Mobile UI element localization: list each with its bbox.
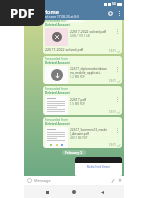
staticText: 1.2 MB PDF (70, 75, 85, 79)
staticText: last seen 17.08.23 at 8:5 (43, 15, 79, 19)
staticText: 22617-2022 solved.pdf (45, 47, 84, 52)
button[interactable]: Record voice message (116, 177, 123, 184)
staticText: Deleted Account (45, 61, 70, 65)
staticText: 4 KB / 191.1 kB (70, 34, 90, 38)
button[interactable]: Document options (115, 96, 120, 105)
button[interactable]: More options (115, 9, 123, 17)
staticText: Deleted Account (45, 23, 70, 27)
staticText: 1.5 MB PDF (70, 102, 85, 106)
button[interactable]: Media Feed Viewer (75, 157, 122, 176)
button[interactable]: Document options (115, 127, 120, 136)
button[interactable]: Attach file (109, 177, 116, 184)
staticText: 22617_diplomarbeitbase (70, 67, 107, 71)
staticText: PDF (10, 4, 35, 22)
button[interactable]: Forwarded from (43, 117, 122, 148)
button[interactable]: Document options (115, 28, 120, 37)
staticText: Forwarded from (45, 19, 68, 23)
staticText: Deleted Account (45, 91, 70, 95)
staticText: Forwarded from (45, 57, 68, 61)
staticText: l_Answer.pdf (70, 132, 89, 136)
staticText: February 2 (65, 150, 83, 155)
staticText: 13:11 (109, 143, 116, 147)
staticText: 13:11 (109, 79, 116, 83)
button[interactable]: Home (69, 187, 79, 197)
staticText: Forwarded from (45, 118, 68, 122)
staticText: 22617-2022 solved.pdf (70, 29, 106, 34)
staticText: Deleted Account (45, 122, 70, 126)
button[interactable]: Back (97, 187, 107, 197)
staticText: Forwarded from (45, 87, 68, 91)
staticText: Home (43, 8, 59, 15)
staticText: 22617_Summer23_mode (70, 128, 108, 132)
staticText: 13:11 (109, 110, 116, 114)
button[interactable]: Message (24, 176, 124, 185)
button[interactable]: Back (24, 6, 30, 20)
staticText: January 30 (66, 18, 83, 23)
staticText: Media Feed Viewer (87, 165, 110, 169)
button[interactable]: Recent apps (42, 187, 52, 197)
button[interactable]: Call (106, 9, 115, 18)
button[interactable]: Forwarded from (43, 56, 122, 84)
button[interactable]: Forwarded from (43, 86, 122, 115)
staticText: 22617.pdf (70, 97, 86, 102)
staticText: Message (34, 178, 51, 183)
staticText: 13:11 (109, 49, 116, 53)
staticText: 54 (112, 2, 116, 6)
staticText: na_mobile_applicati... (70, 71, 103, 75)
button[interactable]: Document options (115, 66, 120, 75)
staticText: 430.7 KB PDF (70, 136, 88, 140)
button[interactable]: Forwarded from (43, 18, 122, 54)
